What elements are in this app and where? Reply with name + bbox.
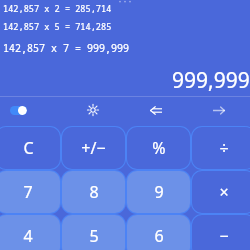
staticText: 8 bbox=[89, 181, 99, 203]
button[interactable]: C bbox=[0, 127, 60, 169]
button[interactable]: 8 bbox=[62, 171, 125, 213]
button[interactable]: 4 bbox=[0, 215, 60, 250]
staticText: % bbox=[152, 137, 166, 159]
staticText: 5 bbox=[89, 225, 99, 247]
staticText: 9 bbox=[154, 181, 164, 203]
staticText: − bbox=[219, 225, 229, 247]
staticText: 142,857 x 2 = 285,714 bbox=[3, 3, 112, 15]
staticText: 142,857 x 5 = 714,285 bbox=[3, 21, 112, 33]
button[interactable]: Toggle bbox=[0, 96, 62, 124]
button[interactable]: ÷ bbox=[192, 127, 250, 169]
staticText: +/− bbox=[81, 137, 106, 159]
button[interactable]: 7 bbox=[0, 171, 60, 213]
button[interactable]: Brightness bbox=[62, 96, 124, 124]
staticText: 6 bbox=[154, 225, 164, 247]
button[interactable]: − bbox=[192, 215, 250, 250]
staticText: C bbox=[23, 137, 34, 159]
button[interactable]: 6 bbox=[127, 215, 190, 250]
button[interactable]: Back bbox=[124, 96, 187, 124]
button[interactable]: +/− bbox=[62, 127, 125, 169]
staticText: ÷ bbox=[219, 137, 229, 159]
button[interactable]: × bbox=[192, 171, 250, 213]
staticText: 142,857 x 7 = 999,999 bbox=[3, 41, 129, 55]
button[interactable]: 5 bbox=[62, 215, 125, 250]
staticText: 4 bbox=[23, 225, 33, 247]
staticText: × bbox=[219, 181, 229, 203]
button[interactable]: % bbox=[127, 127, 190, 169]
button[interactable]: 9 bbox=[127, 171, 190, 213]
staticText: 999,999 bbox=[172, 66, 250, 95]
button[interactable]: Forward bbox=[187, 96, 250, 124]
staticText: 7 bbox=[23, 181, 33, 203]
